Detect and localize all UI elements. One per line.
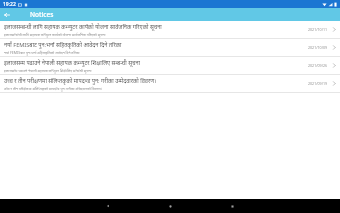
button[interactable]: Home — [151, 199, 189, 213]
staticText: उच्च र तीन परीक्षणमा संलिप्तकृको मापदण्ड… — [4, 86, 102, 91]
button[interactable]: Back — [0, 8, 13, 21]
button[interactable]: इलाजसम्बन्धी लागि सहायक कम्प्युटर कार्यक… — [0, 21, 340, 39]
staticText: उच्च र तीन परीक्षणमा संलिप्तकृको मापदण्ड… — [4, 77, 157, 85]
button[interactable]: नयाँ FEMISबाट पुन:भर्ना सहितकृतिको आवेदन… — [0, 39, 340, 57]
staticText: इलाजसम्बन्धी लागि सहायक कम्प्युटर कार्यक… — [4, 32, 106, 37]
staticText: नयाँ FEMISबाट पुन:भर्ना सहितकृतिको आवेदन… — [4, 41, 122, 49]
other: Open notice — [332, 80, 336, 87]
button[interactable]: Recent apps — [213, 199, 251, 213]
staticText: 2021/09/19 — [308, 81, 328, 86]
staticText: इलाजसम्म पढाउने नेपाली सहायक कम्प्युटर श… — [4, 59, 141, 67]
staticText: इलाजसम्म पढाउने नेपाली सहायक कम्प्युटर श… — [4, 68, 92, 73]
staticText: 2021/10/09 — [308, 45, 328, 50]
staticText: 2021/10/11 — [308, 27, 328, 32]
other: Open notice — [332, 62, 336, 69]
other: Open notice — [332, 26, 336, 33]
staticText: 19:22 — [3, 1, 16, 8]
staticText: इलाजसम्बन्धी लागि सहायक कम्प्युटर कार्यक… — [4, 23, 162, 31]
other: Open notice — [332, 44, 336, 51]
staticText: Notices — [30, 10, 54, 19]
staticText: 2021/09/26 — [308, 63, 328, 68]
button[interactable]: इलाजसम्म पढाउने नेपाली सहायक कम्प्युटर श… — [0, 57, 340, 75]
button[interactable]: उच्च र तीन परीक्षणमा संलिप्तकृको मापदण्ड… — [0, 75, 340, 93]
button[interactable]: Back — [89, 199, 127, 213]
staticText: नयाँ FEMISबाट पुन:भर्ना सहितकृतिको आवेदन… — [4, 50, 80, 55]
